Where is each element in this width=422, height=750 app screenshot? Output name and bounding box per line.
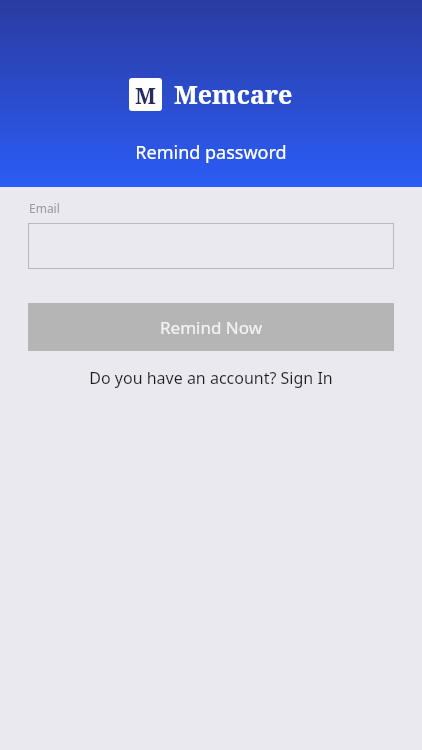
staticText: M [135, 80, 156, 110]
button[interactable]: Remind Now [28, 303, 394, 351]
button[interactable]: Do you have an account? Sign In [28, 361, 394, 395]
button[interactable]: Email input field [28, 223, 394, 269]
staticText: Remind password [135, 140, 287, 165]
staticText: Remind Now [160, 316, 263, 339]
staticText: Memcare [174, 77, 293, 111]
staticText: Email [29, 200, 60, 216]
staticText: Do you have an account? Sign In [89, 367, 333, 389]
